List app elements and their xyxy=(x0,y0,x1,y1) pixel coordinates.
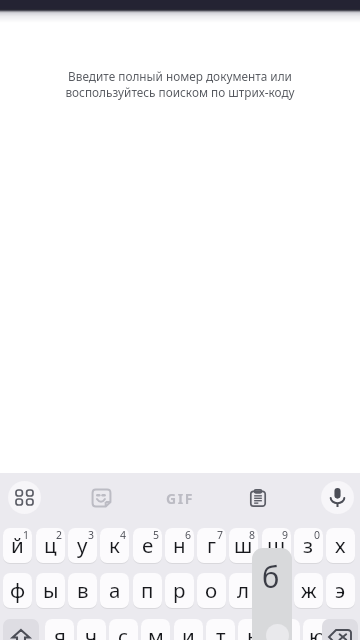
staticText: д xyxy=(270,576,283,604)
staticText: у xyxy=(77,531,88,559)
button[interactable]: б xyxy=(271,619,300,640)
staticText: ш xyxy=(234,531,253,559)
staticText: б xyxy=(279,622,292,640)
staticText: э xyxy=(335,576,346,604)
button[interactable]: й xyxy=(3,528,32,563)
staticText: ч xyxy=(85,622,98,640)
staticText: 0 xyxy=(314,528,321,542)
staticText: п xyxy=(141,576,154,604)
button[interactable]: у xyxy=(68,528,97,563)
staticText: г xyxy=(207,531,216,559)
staticText: ь xyxy=(247,622,259,640)
button[interactable]: а xyxy=(100,573,129,608)
button[interactable]: м xyxy=(141,619,170,640)
button[interactable]: Backspace xyxy=(322,619,358,640)
button[interactable]: ю xyxy=(303,619,332,640)
staticText: е xyxy=(142,531,154,559)
button[interactable]: р xyxy=(165,573,194,608)
staticText: х xyxy=(335,531,346,559)
staticText: 2 xyxy=(56,528,63,542)
staticText: б xyxy=(262,557,280,596)
button[interactable]: Voice input xyxy=(321,481,354,514)
button[interactable]: ж xyxy=(294,573,323,608)
button[interactable]: х xyxy=(326,528,355,563)
button[interactable]: Keyboard apps xyxy=(8,481,41,514)
staticText: з xyxy=(303,531,314,559)
button[interactable]: к xyxy=(100,528,129,563)
button[interactable]: ф xyxy=(3,573,32,608)
staticText: ф xyxy=(10,576,26,604)
button[interactable]: н xyxy=(165,528,194,563)
button[interactable]: ц xyxy=(36,528,65,563)
button[interactable]: ы xyxy=(36,573,65,608)
button[interactable]: ш xyxy=(229,528,258,563)
staticText: 1 xyxy=(23,528,30,542)
button[interactable]: з xyxy=(294,528,323,563)
button[interactable]: е xyxy=(133,528,162,563)
staticText: н xyxy=(173,531,186,559)
staticText: ы xyxy=(43,576,59,604)
staticText: Введите полный номер документа или воспо… xyxy=(65,68,295,101)
button[interactable]: в xyxy=(68,573,97,608)
staticText: 6 xyxy=(185,528,192,542)
staticText: 7 xyxy=(217,528,224,542)
staticText: ц xyxy=(44,531,57,559)
staticText: т xyxy=(216,622,226,640)
button[interactable]: ч xyxy=(77,619,106,640)
staticText: й xyxy=(11,531,24,559)
staticText: 4 xyxy=(120,528,127,542)
staticText: р xyxy=(173,576,186,604)
staticText: и xyxy=(182,622,195,640)
button[interactable]: с xyxy=(109,619,138,640)
button[interactable]: д xyxy=(262,573,291,608)
button[interactable]: Stickers xyxy=(85,481,118,514)
staticText: с xyxy=(118,622,129,640)
staticText: а xyxy=(109,576,121,604)
staticText: в xyxy=(77,576,89,604)
staticText: л xyxy=(237,576,250,604)
button[interactable]: Shift xyxy=(3,619,39,640)
button[interactable]: л xyxy=(229,573,258,608)
staticText: о xyxy=(205,576,218,604)
staticText: м xyxy=(148,622,164,640)
button[interactable]: т xyxy=(206,619,235,640)
staticText: ю xyxy=(309,622,326,640)
button[interactable]: п xyxy=(133,573,162,608)
staticText: щ xyxy=(267,531,286,559)
button[interactable]: э xyxy=(326,573,355,608)
staticText: ж xyxy=(301,576,317,604)
button[interactable]: и xyxy=(174,619,203,640)
staticText: 5 xyxy=(153,528,160,542)
button[interactable]: г xyxy=(197,528,226,563)
button[interactable]: щ xyxy=(262,528,291,563)
staticText: 8 xyxy=(249,528,256,542)
staticText: 3 xyxy=(88,528,95,542)
staticText: 9 xyxy=(282,528,289,542)
button[interactable]: я xyxy=(45,619,74,640)
staticText: GIF xyxy=(166,489,195,508)
button[interactable]: GIF xyxy=(163,481,197,515)
button[interactable]: ь xyxy=(238,619,267,640)
button[interactable]: о xyxy=(197,573,226,608)
staticText: я xyxy=(54,622,66,640)
staticText: к xyxy=(109,531,120,559)
button[interactable]: Clipboard xyxy=(241,481,274,514)
